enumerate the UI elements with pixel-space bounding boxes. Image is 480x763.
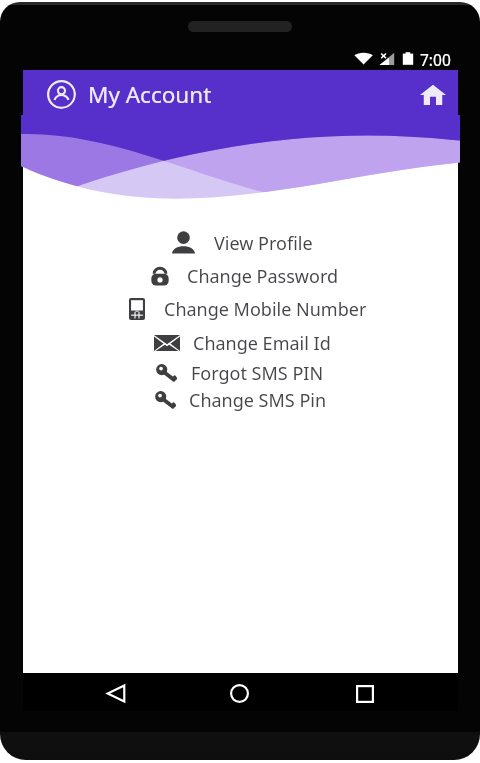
button[interactable]: Change Email Id [150,329,335,357]
staticText: My Account [88,79,212,110]
button[interactable]: Recent apps [344,673,385,711]
staticText: Change Mobile Number [164,297,367,322]
button[interactable]: Change Password [147,262,343,290]
button[interactable]: Change Mobile Number [125,295,371,323]
button[interactable]: View Profile [168,229,317,257]
staticText: 7:00 [420,49,451,70]
button[interactable]: Account [46,79,76,109]
staticText: View Profile [214,231,313,256]
staticText: Change Password [187,264,339,289]
button[interactable]: Back [95,673,136,711]
button[interactable]: Change SMS Pin [150,386,331,414]
button[interactable]: Home [219,673,260,711]
button[interactable]: Home [419,81,447,109]
button[interactable]: Forgot SMS PIN [151,359,328,387]
staticText: Change Email Id [193,331,331,356]
staticText: Change SMS Pin [189,388,327,413]
staticText: Forgot SMS PIN [191,361,324,386]
